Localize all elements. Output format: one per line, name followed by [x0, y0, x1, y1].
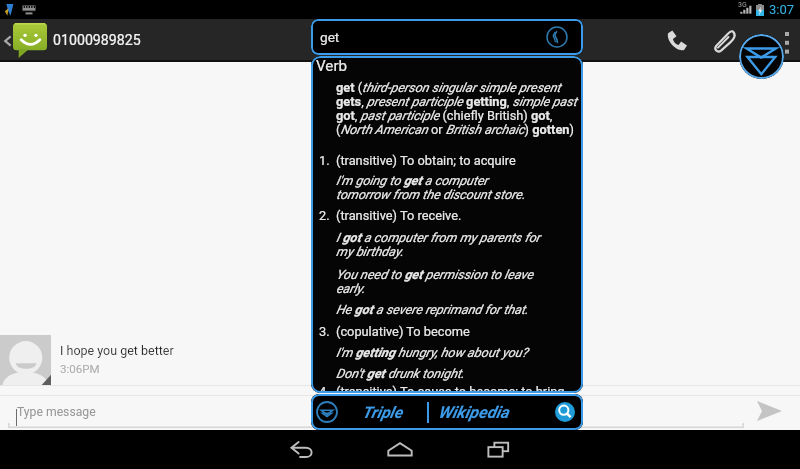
- button[interactable]: Open dictionary: [739, 34, 784, 79]
- staticText: (transitive) To cause to become; to brin…: [336, 384, 580, 393]
- staticText: You need to get permission to leave earl…: [336, 267, 544, 297]
- staticText: 3.: [319, 324, 330, 339]
- button[interactable]: get: [311, 19, 583, 55]
- staticText: 3G: [738, 1, 747, 9]
- button[interactable]: Type message: [0, 396, 738, 430]
- staticText: Verb: [316, 57, 348, 75]
- staticText: Triple: [362, 403, 403, 422]
- staticText: Type message: [17, 405, 96, 419]
- staticText: 1.: [319, 153, 330, 168]
- button[interactable]: Back: [266, 430, 338, 469]
- staticText: 01000989825: [53, 32, 141, 49]
- button[interactable]: Recent apps: [462, 430, 534, 469]
- staticText: 4.: [319, 384, 330, 393]
- button[interactable]: Home: [364, 430, 436, 469]
- staticText: I'm going to get a computer tomorrow fro…: [336, 173, 544, 203]
- button[interactable]: Send: [738, 396, 800, 430]
- staticText: get: [320, 29, 340, 45]
- button[interactable]: Voice search: [545, 25, 569, 49]
- button[interactable]: Triple: [338, 394, 427, 430]
- button[interactable]: More options: [774, 19, 800, 62]
- staticText: (transitive) To obtain; to acquire: [336, 153, 580, 168]
- staticText: I got a computer from my parents for my …: [336, 230, 544, 260]
- staticText: 3:07: [769, 2, 795, 17]
- other: Navigate up: [3, 31, 12, 51]
- button[interactable]: Call: [650, 19, 702, 62]
- button[interactable]: Navigate up: [0, 19, 47, 62]
- button[interactable]: App logo: [316, 401, 338, 423]
- staticText: 2.: [319, 208, 330, 223]
- staticText: 3:06PM: [60, 362, 100, 375]
- staticText: I hope you get better: [60, 343, 174, 358]
- button[interactable]: Wikipedia: [429, 394, 518, 430]
- button[interactable]: Attach: [702, 19, 748, 62]
- staticText: (copulative) To become: [336, 324, 580, 339]
- button[interactable]: Search: [555, 402, 575, 422]
- staticText: (transitive) To receive.: [336, 208, 580, 223]
- staticText: Wikipedia: [438, 403, 509, 422]
- button[interactable]: I hope you get better: [0, 335, 800, 386]
- staticText: He got a severe reprimand for that.: [336, 302, 544, 317]
- staticText: I'm getting hungry, how about you?: [336, 345, 544, 360]
- staticText: Don't get drunk tonight.: [336, 366, 544, 381]
- staticText: get (third-person singular simple presen…: [336, 80, 582, 138]
